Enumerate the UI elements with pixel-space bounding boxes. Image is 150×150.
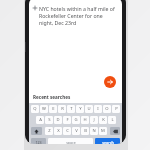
button[interactable]: H: [81, 116, 89, 124]
staticText: H: [83, 117, 87, 123]
button[interactable]: G: [72, 116, 80, 124]
button[interactable]: U: [85, 105, 93, 113]
staticText: A: [39, 117, 42, 123]
button[interactable]: S: [45, 116, 53, 124]
staticText: K: [102, 117, 105, 123]
button[interactable]: R: [58, 105, 66, 113]
staticText: search: [102, 140, 114, 144]
button[interactable]: Z: [45, 127, 53, 135]
staticText: N: [92, 128, 96, 134]
staticText: F: [66, 117, 69, 123]
button[interactable]: 123: [31, 138, 46, 144]
staticText: O: [105, 106, 109, 112]
staticText: 123: [35, 140, 42, 144]
button[interactable]: E: [49, 105, 57, 113]
staticText: I: [97, 106, 99, 112]
staticText: U: [87, 106, 91, 112]
staticText: X: [57, 128, 60, 134]
staticText: B: [84, 128, 87, 134]
button[interactable]: F: [63, 116, 71, 124]
button[interactable]: Submit search: [104, 76, 116, 88]
button[interactable]: search: [95, 138, 120, 144]
button[interactable]: L: [108, 116, 116, 124]
staticText: M: [101, 128, 105, 134]
button[interactable]: space: [48, 138, 93, 144]
button[interactable]: J: [90, 116, 98, 124]
button[interactable]: Assistant: [33, 5, 116, 26]
staticText: G: [74, 117, 78, 123]
staticText: V: [75, 128, 78, 134]
button[interactable]: M: [99, 127, 107, 135]
button[interactable]: D: [54, 116, 62, 124]
staticText: J: [93, 117, 95, 123]
button[interactable]: P: [112, 105, 120, 113]
staticText: L: [111, 117, 114, 123]
button[interactable]: W: [40, 105, 48, 113]
staticText: Y: [79, 106, 82, 112]
button[interactable]: Recent searches: [29, 94, 122, 103]
button[interactable]: Y: [76, 105, 84, 113]
other: Assistant: [33, 6, 37, 10]
staticText: S: [48, 117, 51, 123]
staticText: D: [56, 117, 60, 123]
staticText: P: [115, 106, 118, 112]
staticText: C: [66, 128, 69, 134]
button[interactable]: X: [54, 127, 62, 135]
button[interactable]: Q: [31, 105, 39, 113]
staticText: Q: [33, 106, 37, 112]
staticText: R: [61, 106, 64, 112]
button[interactable]: N: [90, 127, 98, 135]
button[interactable]: Shift: [31, 127, 42, 135]
staticText: W: [42, 106, 46, 112]
button[interactable]: Backspace: [110, 127, 120, 135]
button[interactable]: V: [72, 127, 80, 135]
staticText: Recent searches: [33, 94, 71, 100]
staticText: NYC hotels within a half mile of Rockefe…: [39, 5, 116, 26]
staticText: Z: [48, 128, 51, 134]
staticText: space: [66, 140, 76, 144]
staticText: E: [52, 106, 55, 112]
button[interactable]: O: [103, 105, 111, 113]
button[interactable]: A: [36, 116, 44, 124]
button[interactable]: K: [99, 116, 107, 124]
button[interactable]: T: [67, 105, 75, 113]
button[interactable]: B: [81, 127, 89, 135]
staticText: T: [70, 106, 73, 112]
button[interactable]: C: [63, 127, 71, 135]
button[interactable]: I: [94, 105, 102, 113]
